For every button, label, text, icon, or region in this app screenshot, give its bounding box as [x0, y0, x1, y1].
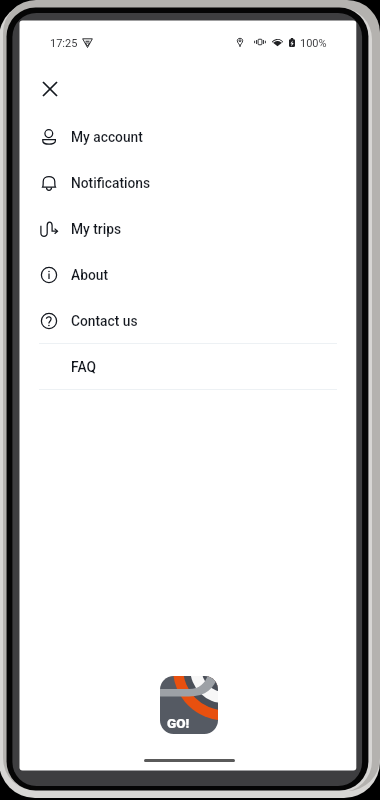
staticText: About: [71, 267, 108, 283]
button[interactable]: Contact us: [20, 298, 356, 344]
button[interactable]: About: [20, 252, 356, 298]
staticText: 17:25: [50, 37, 78, 50]
staticText: Contact us: [71, 313, 138, 329]
staticText: My account: [71, 129, 143, 145]
button[interactable]: FAQ: [20, 344, 356, 390]
staticText: My trips: [71, 221, 122, 237]
staticText: GO!: [167, 715, 190, 731]
button[interactable]: Close: [34, 73, 66, 105]
button[interactable]: Notifications: [20, 160, 356, 206]
staticText: 100%: [300, 37, 327, 50]
button[interactable]: My trips: [20, 206, 356, 252]
button[interactable]: My account: [20, 114, 356, 160]
staticText: FAQ: [71, 359, 96, 375]
staticText: Notifications: [71, 175, 151, 191]
